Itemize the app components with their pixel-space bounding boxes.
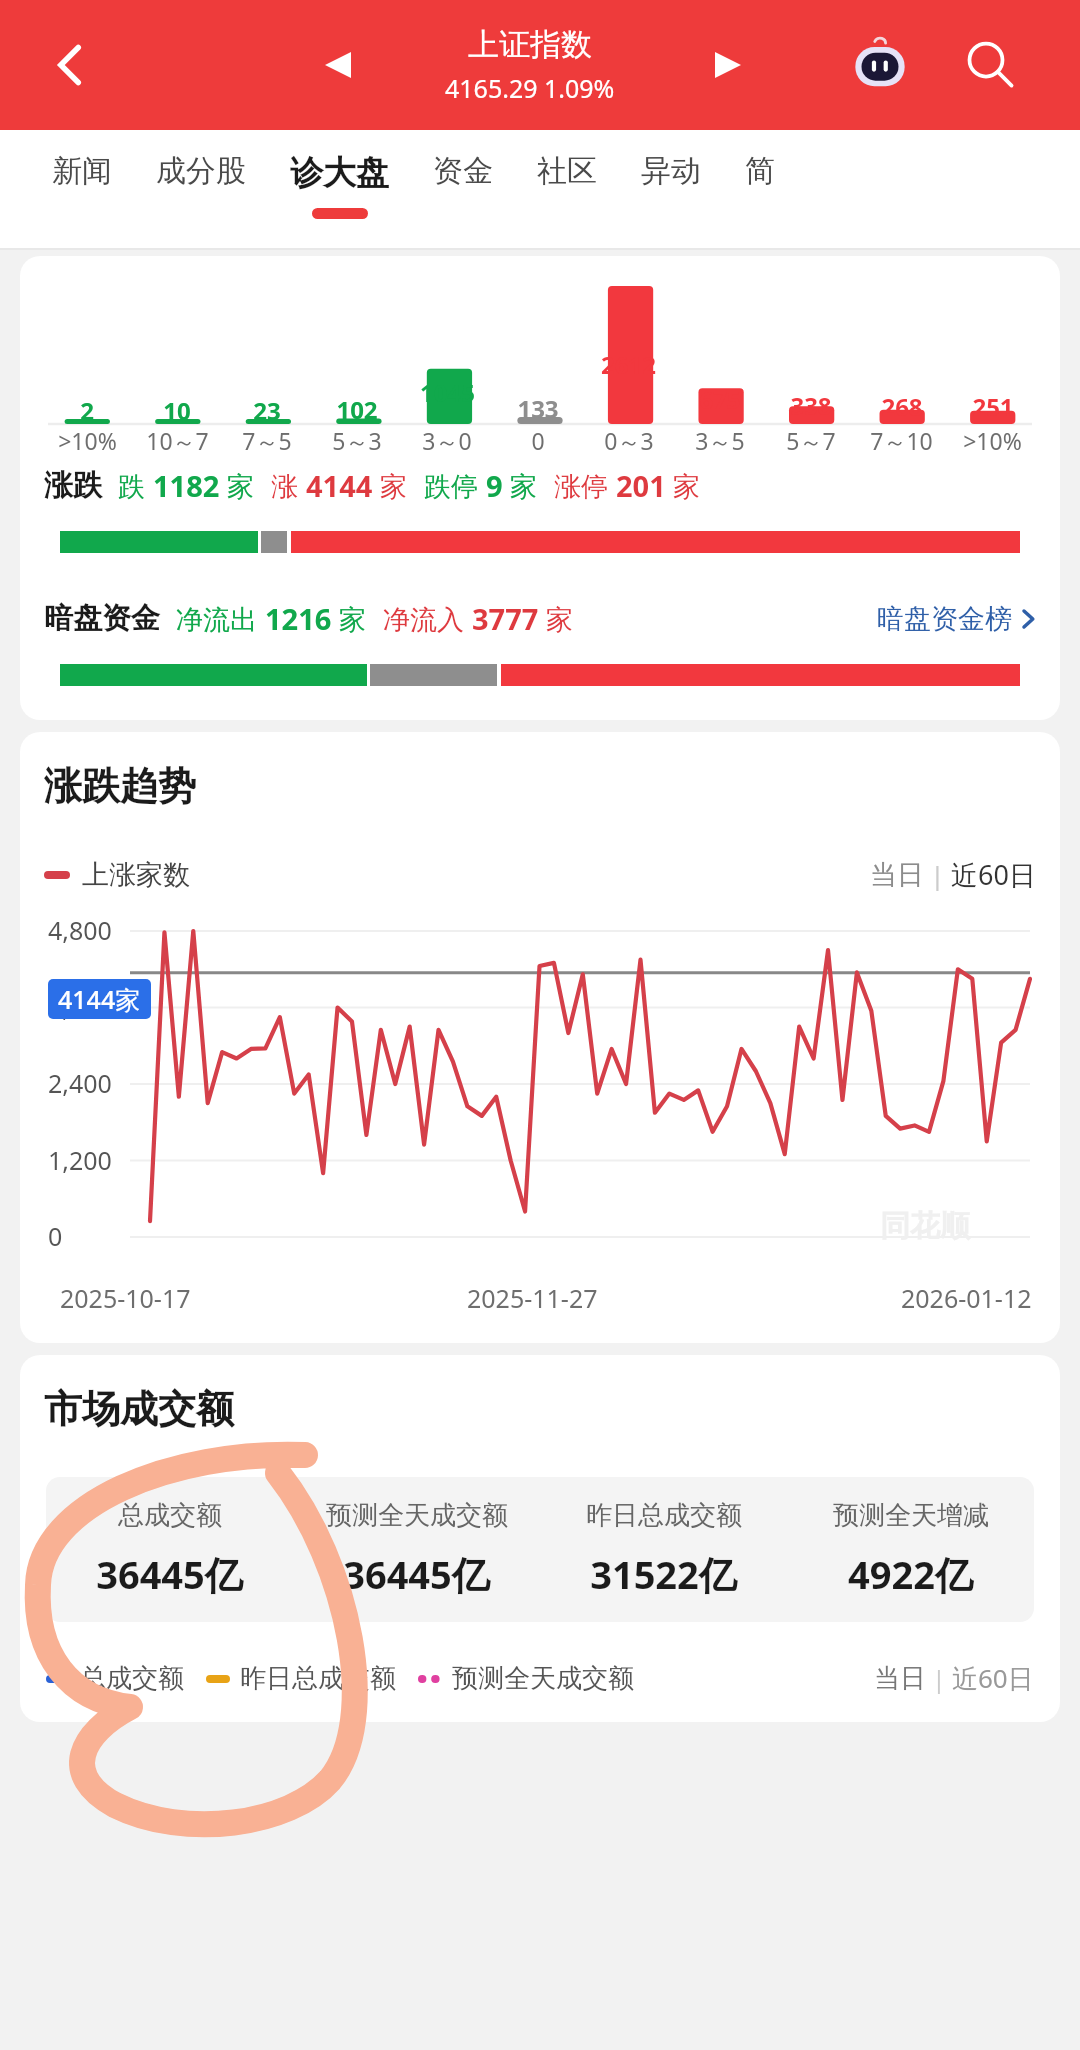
button[interactable]: 涨跌 [44, 466, 1036, 505]
staticText: 3,600 [48, 990, 112, 1024]
staticText: 昨日总成交额 [586, 1499, 742, 1532]
staticText: 新闻 [52, 152, 112, 190]
staticText: 近60日 [951, 856, 1036, 893]
staticText: 1,200 [48, 1143, 112, 1177]
staticText: 7～5 [242, 425, 292, 456]
staticText: 133 [517, 392, 559, 425]
staticText: 251 [972, 390, 1014, 423]
staticText: 近60日 [952, 1660, 1034, 1696]
staticText: 3777 [472, 599, 539, 638]
staticText: 成分股 [156, 152, 246, 190]
staticText: 家 [373, 467, 408, 504]
staticText: 异动 [641, 152, 701, 190]
staticText: 36445亿 [96, 1548, 243, 1600]
staticText: 昨日总成交额 [240, 1662, 396, 1695]
staticText: 涨跌 [44, 467, 102, 504]
staticText: 家 [666, 467, 701, 504]
staticText: 675 [699, 383, 741, 416]
staticText: 涨跌趋势 [44, 762, 196, 810]
staticText: 预测全天增减 [833, 1499, 989, 1532]
staticText: | [926, 1662, 952, 1695]
staticText: 上证指数 [468, 25, 592, 64]
staticText: 0 [48, 1219, 63, 1253]
staticText: 3～0 [422, 425, 472, 456]
button[interactable]: 社区 [519, 152, 615, 190]
button[interactable]: 近60日 [951, 856, 1036, 893]
staticText: 268 [881, 390, 923, 423]
staticText: 338 [790, 389, 832, 422]
staticText: >10% [963, 425, 1022, 456]
staticText: 4922亿 [848, 1548, 973, 1600]
staticText: 预测全天成交额 [452, 1662, 634, 1695]
staticText: 1182 [153, 466, 220, 505]
staticText: >10% [58, 425, 117, 456]
staticText: 同花顺 [880, 1207, 970, 1245]
button[interactable]: 简 [727, 152, 793, 190]
staticText: 涨 [271, 467, 306, 504]
staticText: 4144家 [58, 982, 141, 1016]
staticText: 2026-01-12 [901, 1281, 1032, 1315]
button[interactable]: 成分股 [138, 152, 264, 190]
button[interactable]: Back [40, 35, 100, 95]
button[interactable]: 暗盘资金 [44, 599, 1036, 638]
staticText: 诊大盘 [290, 152, 389, 194]
staticText: 当日 [874, 1662, 926, 1695]
staticText: 9 [486, 466, 503, 505]
button[interactable]: 暗盘资金榜 [877, 602, 1036, 636]
button[interactable]: 异动 [623, 152, 719, 190]
staticText: 社区 [537, 152, 597, 190]
staticText: 10～7 [146, 425, 209, 456]
staticText: 暗盘资金 [44, 600, 160, 637]
staticText: 0～3 [604, 425, 654, 456]
staticText: 5～7 [786, 425, 836, 456]
staticText: 4,800 [48, 913, 112, 947]
staticText: 总成交额 [118, 1499, 222, 1532]
staticText: 家 [539, 600, 574, 637]
staticText: 23 [253, 394, 281, 427]
staticText: 净流出 [176, 600, 265, 637]
button[interactable]: 诊大盘 [272, 152, 407, 219]
button[interactable]: 当日 [870, 858, 924, 892]
staticText: 简 [745, 152, 775, 190]
button[interactable]: 新闻 [34, 152, 130, 190]
staticText: 暗盘资金榜 [877, 602, 1012, 636]
staticText: 资金 [433, 152, 493, 190]
staticText: 4144 [306, 466, 373, 505]
staticText: 市场成交额 [44, 1385, 234, 1433]
staticText: 家 [332, 600, 367, 637]
staticText: 36445亿 [343, 1548, 490, 1600]
button[interactable]: 预测全天成交额 [418, 1662, 634, 1695]
button[interactable]: 昨日总成交额 [206, 1662, 396, 1695]
staticText: 涨停 [554, 467, 616, 504]
staticText: 预测全天成交额 [326, 1499, 508, 1532]
button[interactable]: 总成交额 [46, 1662, 184, 1695]
staticText: | [924, 858, 951, 892]
staticText: 102 [336, 393, 378, 426]
staticText: 10 [163, 394, 191, 427]
staticText: 当日 [870, 858, 924, 892]
button[interactable]: 当日 [874, 1660, 1034, 1696]
staticText: 4165.29 1.09% [445, 71, 615, 105]
staticText: 2,400 [48, 1066, 112, 1100]
staticText: 201 [616, 466, 666, 505]
staticText: 2612 [601, 348, 656, 381]
staticText: 0 [531, 425, 545, 456]
staticText: 跌停 [424, 467, 486, 504]
button[interactable]: AI assistant [845, 30, 915, 100]
staticText: 2 [80, 394, 94, 427]
staticText: 总成交额 [80, 1662, 184, 1695]
button[interactable]: Previous [310, 37, 366, 93]
staticText: 31522亿 [590, 1548, 737, 1600]
staticText: 家 [503, 467, 538, 504]
button[interactable]: Next [700, 37, 756, 93]
staticText: 净流入 [383, 600, 472, 637]
button[interactable]: Search [950, 25, 1030, 105]
button[interactable]: 资金 [415, 152, 511, 190]
staticText: 1045 [420, 376, 475, 409]
staticText: 上涨家数 [82, 858, 190, 892]
staticText: 2025-11-27 [467, 1281, 598, 1315]
staticText: 5～3 [332, 425, 382, 456]
staticText: 1216 [265, 599, 332, 638]
staticText: 3～5 [695, 425, 745, 456]
staticText: 7～10 [870, 425, 933, 456]
